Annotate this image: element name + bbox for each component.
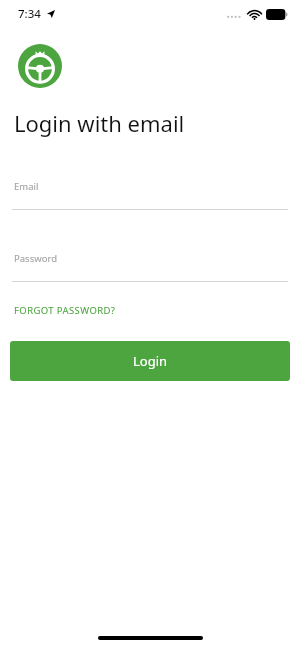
staticText: Login — [133, 352, 168, 370]
staticText: Password — [14, 252, 57, 265]
staticText: 7:34 — [18, 6, 41, 22]
button[interactable]: Login — [10, 341, 290, 381]
staticText: Login with email — [14, 108, 185, 138]
button[interactable]: Password — [0, 252, 300, 282]
button[interactable]: Email — [0, 180, 300, 210]
staticText: Email — [14, 180, 39, 193]
other: App logo — [18, 44, 62, 88]
button[interactable]: FORGOT PASSWORD? — [14, 302, 116, 319]
staticText: FORGOT PASSWORD? — [14, 304, 116, 317]
